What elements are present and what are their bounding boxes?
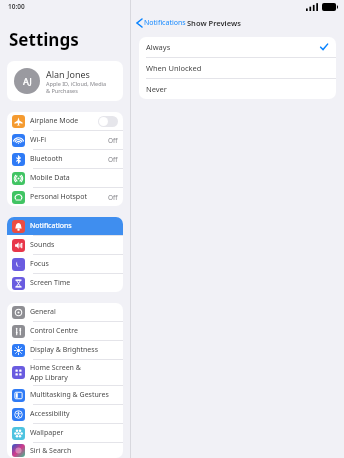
button[interactable]: AJ: [7, 61, 123, 101]
button[interactable]: Mobile Data: [7, 169, 123, 187]
staticText: Control Centre: [30, 326, 79, 336]
staticText: Bluetooth: [30, 154, 63, 164]
button[interactable]: Display & Brightness: [7, 341, 123, 359]
staticText: Always: [146, 42, 320, 52]
button[interactable]: Always: [139, 37, 336, 57]
button[interactable]: Airplane Mode toggle: [98, 116, 118, 127]
staticText: Alan Jones: [46, 68, 90, 80]
staticText: Accessibility: [30, 409, 70, 419]
staticText: Mobile Data: [30, 173, 70, 183]
staticText: Never: [146, 84, 328, 94]
button[interactable]: Personal Hotspot: [7, 188, 123, 206]
button[interactable]: Never: [139, 79, 336, 99]
staticText: Apple ID, iCloud, Media: [46, 80, 107, 87]
button[interactable]: Screen Time: [7, 274, 123, 292]
button[interactable]: General: [7, 303, 123, 321]
button[interactable]: Wi-Fi: [7, 131, 123, 149]
staticText: Off: [108, 136, 118, 145]
button[interactable]: Accessibility: [7, 405, 123, 423]
staticText: Wi-Fi: [30, 135, 47, 145]
button[interactable]: Notifications: [135, 16, 188, 30]
staticText: Focus: [30, 259, 49, 269]
button[interactable]: Airplane Mode: [7, 112, 123, 130]
staticText: Show Previews: [187, 18, 241, 28]
staticText: App Library: [30, 373, 68, 383]
staticText: Personal Hotspot: [30, 192, 87, 202]
staticText: 10:00: [8, 2, 25, 11]
staticText: Multitasking & Gestures: [30, 390, 109, 400]
staticText: Notifications: [30, 221, 72, 231]
staticText: Airplane Mode: [30, 116, 79, 126]
button[interactable]: When Unlocked: [139, 58, 336, 78]
staticText: & Purchases: [46, 87, 78, 94]
staticText: Display & Brightness: [30, 345, 99, 355]
button[interactable]: Sounds: [7, 236, 123, 254]
staticText: Wallpaper: [30, 428, 64, 438]
staticText: Screen Time: [30, 278, 71, 288]
staticText: Notifications: [144, 18, 186, 28]
button[interactable]: Bluetooth: [7, 150, 123, 168]
button[interactable]: Notifications: [7, 217, 123, 235]
staticText: When Unlocked: [146, 63, 328, 73]
button[interactable]: Home Screen &: [7, 360, 123, 385]
staticText: Sounds: [30, 240, 55, 250]
button[interactable]: Multitasking & Gestures: [7, 386, 123, 404]
staticText: Off: [108, 155, 118, 164]
button[interactable]: Control Centre: [7, 322, 123, 340]
button[interactable]: Siri & Search: [7, 443, 123, 458]
staticText: Home Screen &: [30, 363, 81, 373]
button[interactable]: Focus: [7, 255, 123, 273]
staticText: AJ: [23, 75, 32, 87]
staticText: Settings: [9, 28, 79, 51]
staticText: General: [30, 307, 56, 317]
staticText: Siri & Search: [30, 446, 72, 456]
staticText: Off: [108, 193, 118, 202]
button[interactable]: Wallpaper: [7, 424, 123, 442]
